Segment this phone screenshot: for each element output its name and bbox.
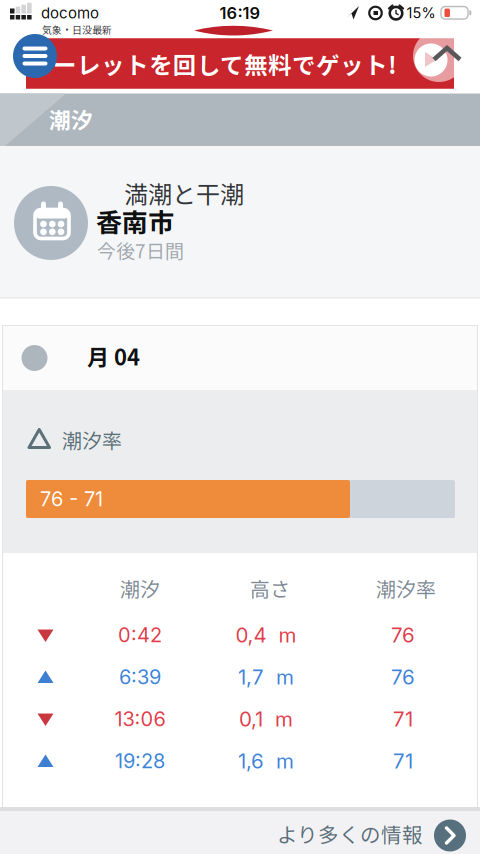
button[interactable]: より多くの情報 xyxy=(0,811,480,854)
staticText: 19:28 xyxy=(115,749,165,773)
staticText: m xyxy=(275,707,293,731)
staticText: ーレットを回して無料でゲット! xyxy=(53,47,397,81)
staticText: 1,6 xyxy=(238,749,264,773)
button[interactable]: メニュー xyxy=(13,34,57,78)
staticText: 13:06 xyxy=(114,707,165,731)
staticText: 今後7日間 xyxy=(97,236,184,264)
staticText: 香南市 xyxy=(96,202,174,240)
staticText: 潮汐率 xyxy=(62,425,122,454)
button[interactable]: 広告を閉じる xyxy=(412,31,476,89)
staticText: m xyxy=(276,749,294,773)
staticText: 0:42 xyxy=(118,623,162,647)
staticText: 76 xyxy=(391,665,415,689)
staticText: 76 - 71 xyxy=(40,487,103,511)
staticText: 16:19 xyxy=(219,3,260,23)
staticText: 76 xyxy=(391,623,415,647)
staticText: docomo xyxy=(41,4,99,22)
staticText: 潮汐率 xyxy=(376,573,436,602)
staticText: 潮汐 xyxy=(120,573,160,602)
staticText: 月 04 xyxy=(87,340,140,372)
staticText: 71 xyxy=(393,707,413,731)
staticText: 0,1 xyxy=(239,707,263,731)
staticText: 71 xyxy=(393,749,413,773)
staticText: m xyxy=(276,665,294,689)
staticText: 0,4 xyxy=(235,623,266,647)
staticText: 気象・日没最新 xyxy=(42,22,112,37)
staticText: 15% xyxy=(406,4,435,22)
button[interactable]: ーレットを回して無料でゲット! xyxy=(26,38,454,89)
staticText: 高さ xyxy=(250,573,290,602)
staticText: より多くの情報 xyxy=(277,819,423,848)
staticText: 6:39 xyxy=(119,665,161,689)
staticText: 満潮と干潮 xyxy=(124,176,244,210)
staticText: 1,7 xyxy=(238,665,264,689)
staticText: 潮汐 xyxy=(49,103,93,135)
staticText: m xyxy=(278,623,296,647)
